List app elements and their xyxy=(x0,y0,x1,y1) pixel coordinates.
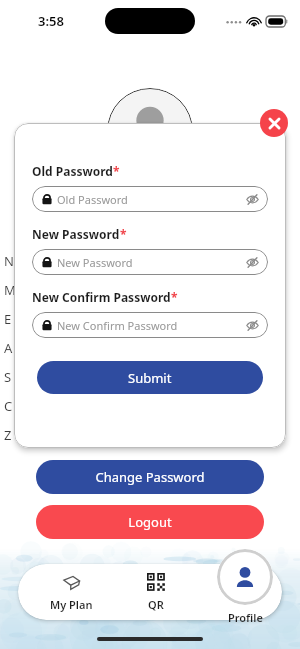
other: Show password xyxy=(246,193,259,206)
staticText: New Confirm Password xyxy=(32,289,171,305)
staticText: M xyxy=(4,281,16,299)
staticText: New Password xyxy=(32,226,120,242)
staticText: Z xyxy=(4,426,12,444)
other: Profile xyxy=(217,549,273,605)
staticText: A xyxy=(4,339,13,357)
staticText: S xyxy=(4,368,12,386)
staticText: New Password xyxy=(57,255,133,270)
staticText: Submit xyxy=(128,369,172,387)
staticText: QR xyxy=(148,597,164,612)
button[interactable]: Change Password xyxy=(36,460,264,494)
other: Show password xyxy=(246,319,259,332)
staticText: Change Password xyxy=(95,468,205,486)
staticText: * xyxy=(120,226,127,242)
staticText: N xyxy=(4,252,14,270)
button[interactable]: New Password xyxy=(32,249,268,275)
staticText: New Confirm Password xyxy=(57,318,178,333)
other: Show password xyxy=(246,256,259,269)
staticText: Logout xyxy=(128,513,172,531)
button[interactable]: New Confirm Password xyxy=(32,312,268,338)
button[interactable]: Submit xyxy=(37,361,263,394)
staticText: E xyxy=(4,310,12,328)
staticText: * xyxy=(171,289,178,305)
staticText: Old Password xyxy=(32,163,113,179)
staticText: My Plan xyxy=(50,597,93,612)
staticText: * xyxy=(113,163,120,179)
staticText: Old Password xyxy=(57,192,128,207)
button[interactable]: Logout xyxy=(36,505,264,539)
staticText: 3:58 xyxy=(38,12,64,30)
staticText: C xyxy=(4,397,13,415)
staticText: Profile xyxy=(228,610,263,625)
button[interactable]: Close xyxy=(260,109,288,137)
button[interactable]: Old Password xyxy=(32,186,268,212)
button[interactable]: QR xyxy=(123,569,189,616)
button[interactable]: Profile xyxy=(212,549,278,625)
button[interactable]: My Plan xyxy=(38,569,104,616)
